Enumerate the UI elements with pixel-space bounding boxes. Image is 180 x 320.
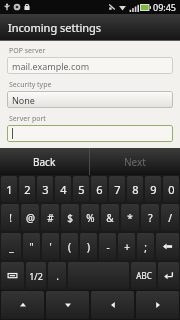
button[interactable]: +: [118, 233, 135, 260]
button[interactable]: Space: [68, 262, 129, 289]
button[interactable]: *: [121, 204, 139, 231]
staticText: 1/2: [29, 270, 43, 282]
button[interactable]: 7: [109, 176, 125, 202]
button[interactable]: -: [99, 233, 116, 260]
staticText: 6: [96, 182, 103, 197]
staticText: ABC: [136, 270, 152, 281]
staticText: ?: [148, 211, 153, 225]
button[interactable]: Right: [136, 291, 179, 319]
button[interactable]: Enter: [158, 262, 179, 289]
button[interactable]: 3: [37, 176, 53, 202]
staticText: -: [106, 240, 110, 254]
staticText: Back: [33, 155, 56, 169]
staticText: 4: [60, 182, 67, 197]
button[interactable]: mail.example.com: [7, 57, 173, 74]
button[interactable]: ;: [137, 233, 154, 260]
staticText: 9: [150, 182, 157, 197]
staticText: Incoming settings: [8, 20, 102, 35]
button[interactable]: _: [1, 233, 21, 260]
button[interactable]: 9: [145, 176, 161, 202]
button[interactable]: @: [21, 204, 39, 231]
staticText: (: [68, 240, 71, 254]
staticText: 8: [132, 182, 139, 197]
staticText: 1: [6, 182, 13, 197]
button[interactable]: 5: [73, 176, 89, 202]
staticText: 3: [42, 182, 49, 197]
button[interactable]: Back: [0, 148, 89, 175]
staticText: ": [29, 240, 34, 254]
button[interactable]: ?: [141, 204, 159, 231]
staticText: POP server: [9, 46, 46, 56]
button[interactable]: Down: [46, 291, 89, 319]
staticText: mail.example.com: [12, 60, 90, 72]
button[interactable]: 6: [91, 176, 107, 202]
staticText: _: [9, 240, 14, 254]
staticText: 5: [78, 182, 85, 197]
button[interactable]: Keyboard settings: [1, 262, 24, 289]
button[interactable]: Backspace: [156, 233, 179, 260]
button[interactable]: !: [1, 204, 19, 231]
button[interactable]: 2: [19, 176, 35, 202]
staticText: Next: [124, 155, 146, 169]
staticText: ': [49, 240, 52, 254]
button[interactable]: .: [48, 262, 66, 289]
button[interactable]: Next: [90, 148, 180, 175]
button[interactable]: /: [161, 204, 179, 231]
button[interactable]: 4: [55, 176, 71, 202]
staticText: 09:45: [153, 1, 177, 13]
button[interactable]: 8: [127, 176, 143, 202]
button[interactable]: Incoming settings: [0, 14, 180, 40]
button[interactable]: $: [61, 204, 79, 231]
staticText: !: [9, 211, 12, 225]
button[interactable]: Up: [1, 291, 44, 319]
button[interactable]: ABC: [131, 262, 156, 289]
staticText: ): [87, 240, 90, 254]
button[interactable]: &: [101, 204, 119, 231]
staticText: &: [106, 211, 114, 225]
staticText: Server port: [9, 114, 46, 124]
button[interactable]: ': [42, 233, 59, 260]
button[interactable]: 0: [163, 176, 179, 202]
staticText: 2: [24, 182, 31, 197]
staticText: #: [47, 211, 54, 225]
staticText: *: [127, 211, 133, 225]
staticText: .: [56, 269, 59, 283]
staticText: /: [168, 211, 172, 225]
staticText: ;: [144, 240, 147, 254]
button[interactable]: %: [81, 204, 99, 231]
button[interactable]: None: [7, 91, 173, 108]
staticText: None: [12, 94, 35, 106]
button[interactable]: 1: [1, 176, 17, 202]
staticText: 0: [168, 182, 175, 197]
button[interactable]: 1/2: [26, 262, 46, 289]
button[interactable]: (: [61, 233, 78, 260]
button[interactable]: [7, 125, 173, 142]
staticText: $: [67, 211, 73, 225]
staticText: Security type: [9, 80, 52, 90]
staticText: @: [26, 211, 35, 225]
button[interactable]: #: [41, 204, 59, 231]
button[interactable]: ": [23, 233, 40, 260]
staticText: %: [86, 211, 95, 225]
button[interactable]: ): [80, 233, 97, 260]
staticText: +: [124, 240, 130, 254]
staticText: 7: [114, 182, 121, 197]
button[interactable]: Left: [91, 291, 134, 319]
